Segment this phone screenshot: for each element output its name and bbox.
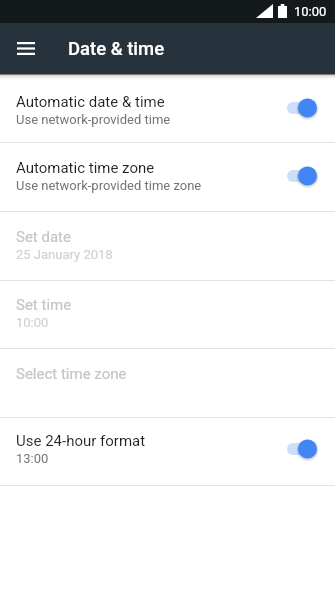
- staticText: Date & time: [68, 38, 165, 60]
- button[interactable]: Open navigation menu: [0, 23, 51, 74]
- staticText: 10:00: [294, 4, 327, 19]
- button[interactable]: Use 24-hour format: [0, 418, 335, 485]
- button[interactable]: Set date: [0, 212, 335, 280]
- staticText: Automatic time zone: [16, 159, 155, 177]
- button[interactable]: Automatic time zone: [0, 143, 335, 211]
- staticText: 13:00: [16, 451, 49, 466]
- staticText: Use network-provided time: [16, 112, 171, 127]
- button[interactable]: Automatic date & time: [0, 74, 335, 142]
- button[interactable]: Set time: [0, 281, 335, 348]
- button[interactable]: Select time zone: [0, 349, 335, 417]
- staticText: Set date: [16, 228, 71, 246]
- staticText: Use network-provided time zone: [16, 178, 202, 193]
- staticText: 10:00: [16, 315, 49, 330]
- button[interactable]: Automatic time zone switch, on: [285, 163, 318, 189]
- staticText: Set time: [16, 296, 72, 314]
- button[interactable]: Use 24-hour format switch, on: [285, 436, 318, 462]
- button[interactable]: Automatic date & time switch, on: [285, 95, 318, 121]
- staticText: Select time zone: [16, 365, 127, 383]
- staticText: 25 January 2018: [16, 247, 113, 262]
- staticText: Automatic date & time: [16, 93, 165, 111]
- staticText: Use 24-hour format: [16, 432, 146, 450]
